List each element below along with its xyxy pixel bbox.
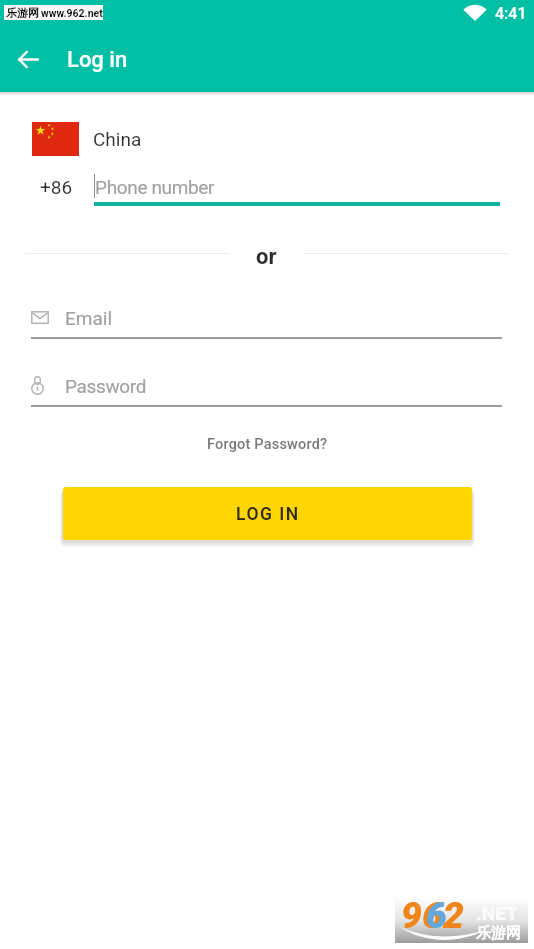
staticText: 6: [426, 894, 447, 937]
staticText: Forgot Password?: [207, 436, 328, 453]
staticText: 乐游网: [476, 924, 521, 943]
staticText: 4:41: [495, 4, 527, 23]
staticText: LOG IN: [236, 504, 300, 525]
staticText: 乐游网: [6, 6, 39, 20]
staticText: Log in: [67, 47, 128, 73]
staticText: Phone number: [95, 176, 215, 198]
button[interactable]: Forgot Password?: [201, 430, 333, 458]
button[interactable]: Email: [31, 303, 502, 339]
staticText: Password: [65, 375, 147, 397]
button[interactable]: Back: [8, 39, 48, 79]
staticText: .NET: [476, 902, 518, 924]
staticText: 962: [401, 894, 464, 937]
button[interactable]: China: [32, 119, 534, 159]
staticText: +86: [40, 176, 73, 198]
button[interactable]: Phone number: [92, 170, 502, 206]
staticText: www.962.net: [41, 7, 103, 19]
staticText: China: [93, 128, 142, 150]
button[interactable]: Password: [31, 371, 502, 407]
button[interactable]: LOG IN: [63, 487, 472, 540]
staticText: or: [256, 244, 277, 270]
staticText: Email: [65, 307, 113, 329]
